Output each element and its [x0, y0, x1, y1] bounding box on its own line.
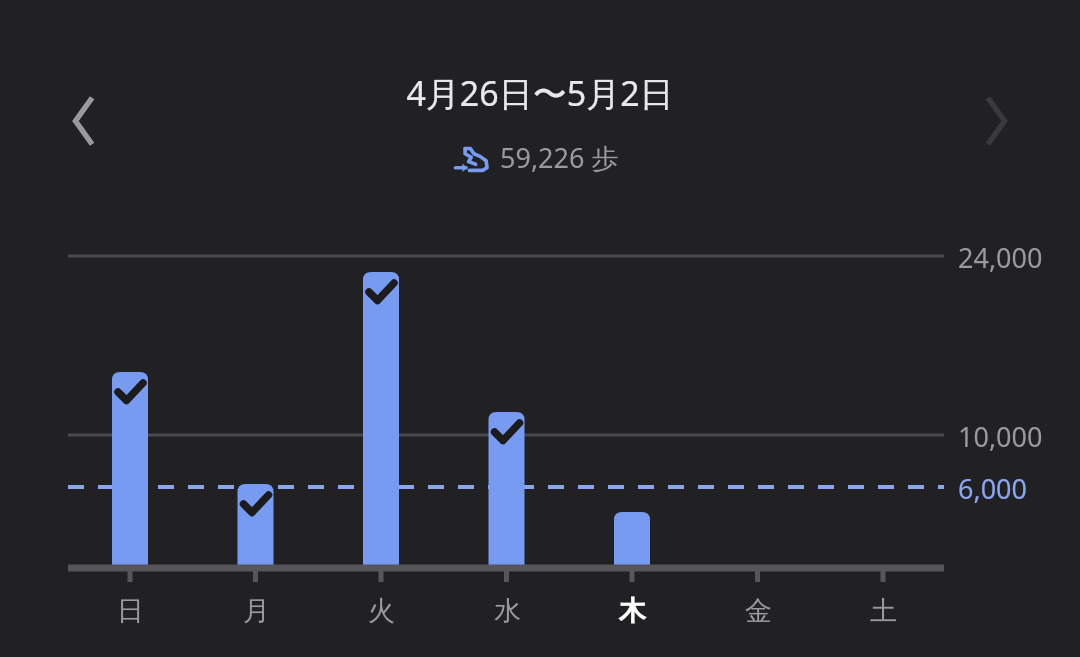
staticText: 水: [494, 594, 521, 628]
staticText: 木: [619, 594, 646, 628]
button[interactable]: 水: [477, 588, 537, 634]
staticText: 金: [745, 594, 772, 628]
button[interactable]: 金: [728, 588, 788, 634]
staticText: 59,226 歩: [500, 139, 619, 176]
staticText: 24,000: [958, 239, 1043, 276]
staticText: 日: [117, 594, 144, 628]
staticText: 6,000: [958, 470, 1028, 507]
staticText: 月: [243, 594, 270, 628]
button[interactable]: 火: [351, 588, 411, 634]
button[interactable]: 日: [100, 588, 160, 634]
staticText: 4月26日〜5月2日: [0, 70, 1080, 657]
staticText: 火: [368, 594, 395, 628]
staticText: 土: [870, 594, 897, 628]
button[interactable]: 木: [602, 588, 662, 634]
button[interactable]: 月: [226, 588, 286, 634]
button[interactable]: 次の週: [972, 92, 1030, 150]
button[interactable]: 前の週: [50, 92, 108, 150]
button[interactable]: 土: [853, 588, 913, 634]
staticText: 10,000: [958, 418, 1043, 455]
